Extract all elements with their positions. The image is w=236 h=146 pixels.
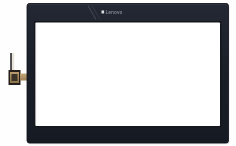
button[interactable]: Lenovo tablet touch screen digitizer (0, 0, 236, 146)
